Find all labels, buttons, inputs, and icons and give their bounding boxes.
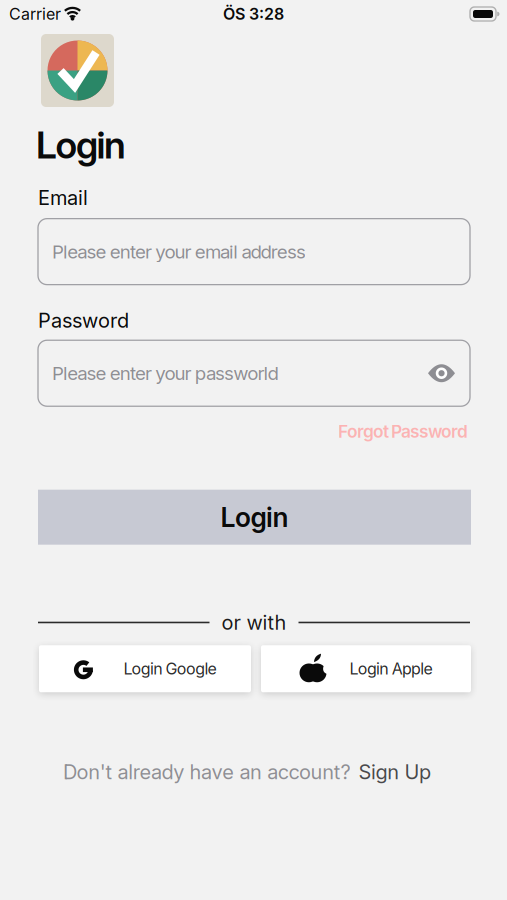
button[interactable]: Login Apple bbox=[261, 645, 471, 692]
staticText: or with bbox=[221, 611, 286, 634]
staticText: Login bbox=[36, 123, 126, 167]
button[interactable]: Forgot Password bbox=[338, 421, 468, 442]
staticText: Login bbox=[220, 501, 288, 533]
staticText: Please enter your email address bbox=[52, 241, 306, 263]
staticText: Login Apple bbox=[349, 659, 432, 678]
staticText: Please enter your passworld bbox=[52, 362, 279, 384]
staticText: Sign Up bbox=[358, 760, 431, 784]
staticText: Password bbox=[38, 309, 129, 332]
staticText: Email bbox=[38, 186, 88, 210]
button[interactable]: Login Google bbox=[39, 645, 251, 692]
button[interactable]: Login bbox=[38, 490, 471, 545]
button[interactable]: Show password bbox=[428, 364, 455, 383]
button[interactable]: Sign Up bbox=[358, 760, 431, 784]
staticText: Forgot Password bbox=[338, 421, 468, 442]
staticText: ÖS 3:28 bbox=[223, 5, 284, 23]
staticText: Don't already have an account? bbox=[63, 760, 350, 784]
staticText: Carrier bbox=[9, 5, 61, 23]
staticText: Login Google bbox=[123, 659, 217, 678]
